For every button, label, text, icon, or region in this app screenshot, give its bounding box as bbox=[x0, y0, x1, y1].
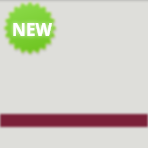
button[interactable] bbox=[0, 113, 148, 128]
button[interactable]: New bbox=[3, 1, 57, 55]
staticText: NEW bbox=[12, 18, 52, 41]
staticText: NEW bbox=[12, 18, 52, 41]
